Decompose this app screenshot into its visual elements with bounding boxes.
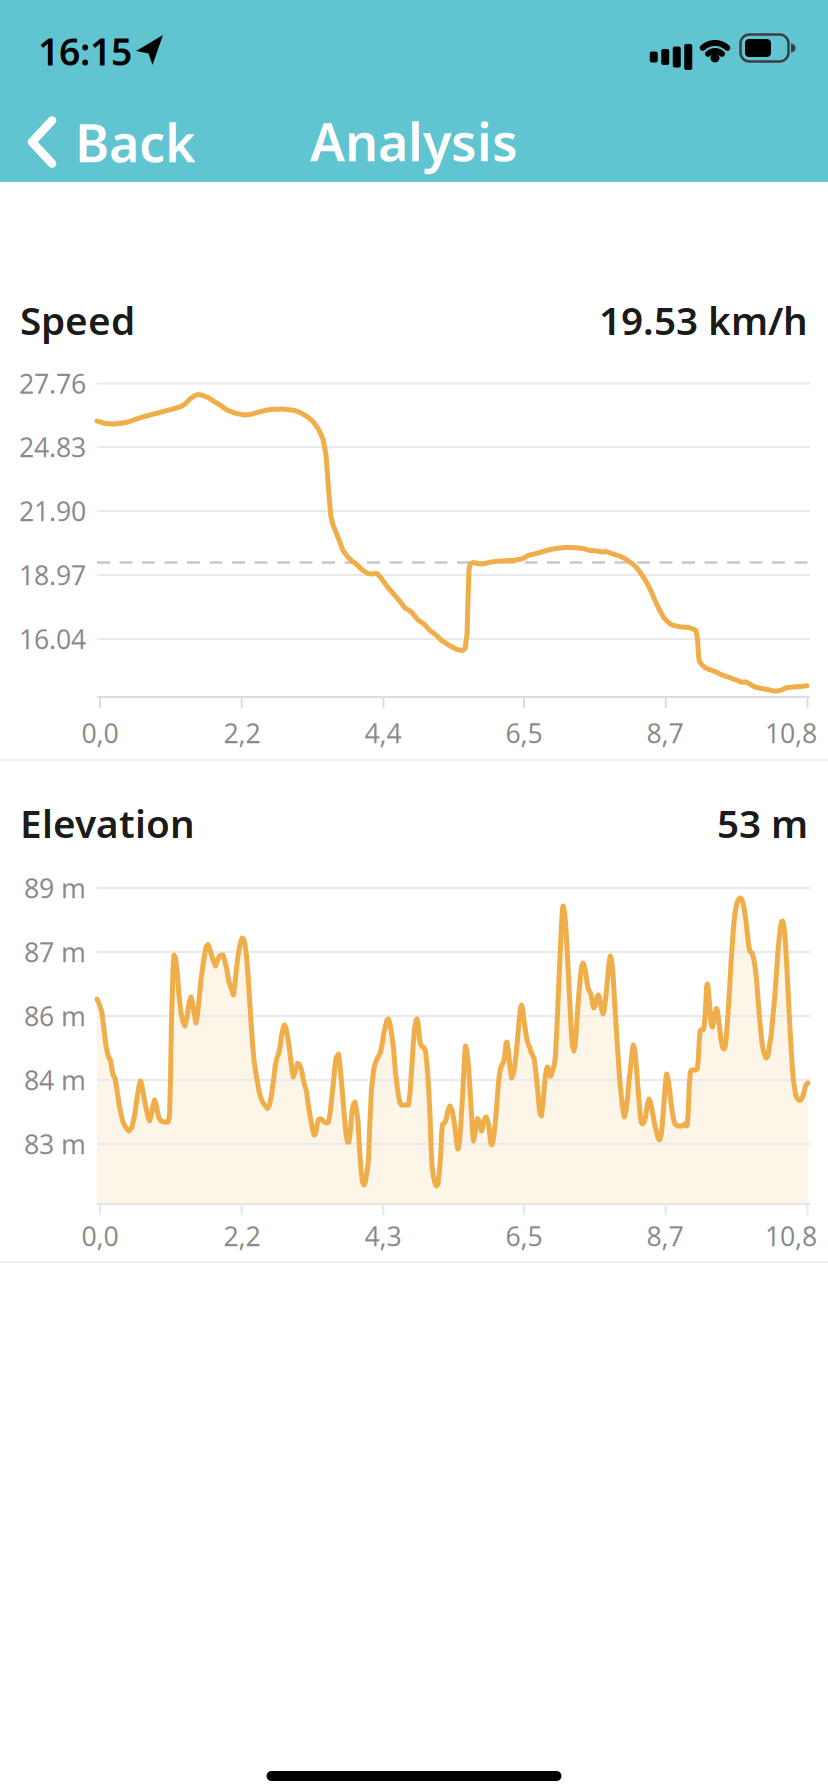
staticText: 16:15 [38, 26, 132, 76]
staticText: 53 m [717, 797, 808, 849]
staticText: 21.90 [19, 493, 86, 529]
staticText: 2,2 [223, 715, 260, 751]
staticText: 87 m [24, 934, 86, 970]
staticText: 10,8 [765, 715, 817, 751]
staticText: Back [75, 107, 196, 177]
staticText: Speed [20, 294, 135, 346]
staticText: Analysis [310, 106, 518, 176]
staticText: 0,0 [81, 715, 118, 751]
staticText: 18.97 [19, 557, 86, 593]
staticText: 8,7 [646, 1218, 683, 1254]
staticText: 16.04 [19, 621, 86, 657]
staticText: 89 m [24, 870, 86, 906]
staticText: Elevation [20, 797, 195, 849]
staticText: 0,0 [81, 1218, 118, 1254]
staticText: 10,8 [765, 1218, 817, 1254]
staticText: 86 m [24, 998, 86, 1034]
staticText: 4,3 [364, 1218, 401, 1254]
button[interactable]: Back [28, 107, 196, 177]
staticText: 84 m [24, 1062, 86, 1098]
staticText: 83 m [24, 1126, 86, 1162]
staticText: 19.53 km/h [599, 294, 808, 346]
staticText: 6,5 [505, 1218, 542, 1254]
staticText: 6,5 [505, 715, 542, 751]
staticText: 24.83 [19, 429, 86, 465]
staticText: 4,4 [364, 715, 401, 751]
staticText: 2,2 [223, 1218, 260, 1254]
staticText: 27.76 [19, 366, 86, 401]
staticText: 8,7 [646, 715, 683, 751]
